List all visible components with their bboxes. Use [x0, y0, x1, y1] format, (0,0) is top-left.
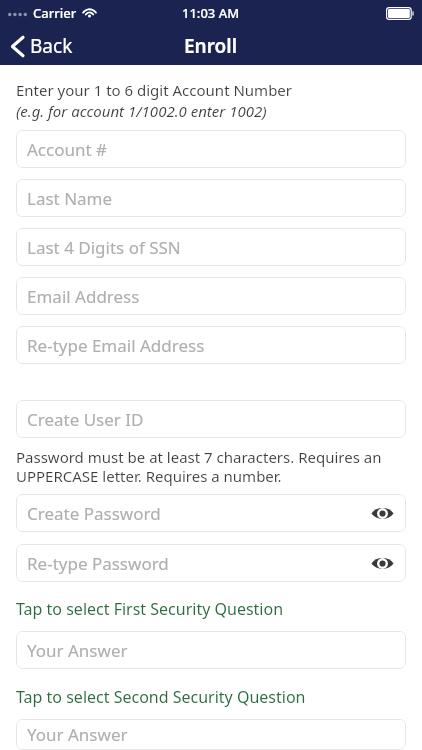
- staticText: Create User ID: [27, 408, 144, 431]
- button[interactable]: Tap to select Second Security Question: [16, 686, 406, 708]
- staticText: Enroll: [184, 33, 238, 59]
- staticText: 11:03 AM: [182, 4, 240, 22]
- button[interactable]: Account #: [16, 130, 406, 168]
- button[interactable]: Last Name: [16, 179, 406, 217]
- staticText: Tap to select Second Security Question: [16, 686, 306, 708]
- staticText: Email Address: [27, 285, 140, 308]
- staticText: Re-type Password: [27, 552, 169, 575]
- staticText: Tap to select First Security Question: [16, 598, 284, 620]
- button[interactable]: Back: [0, 29, 85, 63]
- button[interactable]: Re-type Password: [16, 544, 406, 582]
- staticText: Last 4 Digits of SSN: [27, 236, 181, 259]
- staticText: Last Name: [27, 187, 113, 210]
- button[interactable]: Your Answer: [16, 719, 406, 750]
- staticText: Account #: [27, 138, 108, 161]
- staticText: Back: [30, 33, 73, 59]
- staticText: (e.g. for account 1/1002.0 enter 1002): [16, 101, 267, 121]
- staticText: Enter your 1 to 6 digit Account Number: [16, 80, 293, 100]
- staticText: Your Answer: [27, 723, 128, 746]
- button[interactable]: Show password: [367, 498, 397, 528]
- button[interactable]: Show password: [367, 548, 397, 578]
- button[interactable]: Re-type Email Address: [16, 326, 406, 364]
- button[interactable]: Tap to select First Security Question: [16, 598, 406, 620]
- button[interactable]: Email Address: [16, 277, 406, 315]
- button[interactable]: Your Answer: [16, 631, 406, 669]
- button[interactable]: Create User ID: [16, 400, 406, 438]
- button[interactable]: Last 4 Digits of SSN: [16, 228, 406, 266]
- staticText: Your Answer: [27, 639, 128, 662]
- staticText: Carrier: [33, 4, 77, 22]
- staticText: Create Password: [27, 502, 161, 525]
- staticText: Re-type Email Address: [27, 334, 205, 357]
- button[interactable]: Create Password: [16, 494, 406, 532]
- staticText: Password must be at least 7 characters. …: [16, 447, 406, 486]
